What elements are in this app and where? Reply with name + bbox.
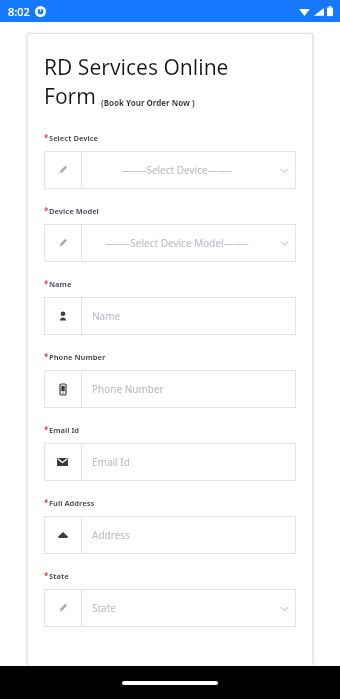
staticText: * <box>44 497 49 508</box>
staticText: State <box>49 571 69 581</box>
staticText: Full Address <box>49 498 95 508</box>
staticText: ——–Select Device Model——– <box>105 236 249 250</box>
staticText: Select Device <box>49 133 99 143</box>
staticText: Device Model <box>49 206 99 216</box>
staticText: 8:02 <box>8 4 30 19</box>
staticText: Email Id <box>92 455 130 469</box>
staticText: * <box>44 570 49 581</box>
staticText: RD Services Online <box>44 53 229 82</box>
staticText: Email Id <box>49 425 80 435</box>
button[interactable]: ——–Select Device Model——– <box>44 224 296 262</box>
button[interactable]: ——–Select Device——– <box>44 151 296 189</box>
staticText: Phone Number <box>49 352 106 362</box>
staticText: (Book Your Order Now ) <box>101 97 195 108</box>
button[interactable]: Email Id <box>44 443 296 481</box>
button[interactable]: State <box>44 589 296 627</box>
staticText: * <box>44 278 49 289</box>
staticText: * <box>44 351 49 362</box>
staticText: Address <box>92 528 130 542</box>
staticText: Name <box>49 279 72 289</box>
staticText: ——–Select Device——– <box>121 163 233 177</box>
staticText: * <box>44 424 49 435</box>
staticText: * <box>44 132 49 143</box>
button[interactable]: Address <box>44 516 296 554</box>
staticText: Name <box>92 309 121 323</box>
button[interactable]: Phone Number <box>44 370 296 408</box>
button[interactable]: Name <box>44 297 296 335</box>
staticText: Phone Number <box>92 382 164 396</box>
staticText: Form <box>44 82 96 111</box>
staticText: State <box>92 601 116 615</box>
staticText: * <box>44 205 49 216</box>
